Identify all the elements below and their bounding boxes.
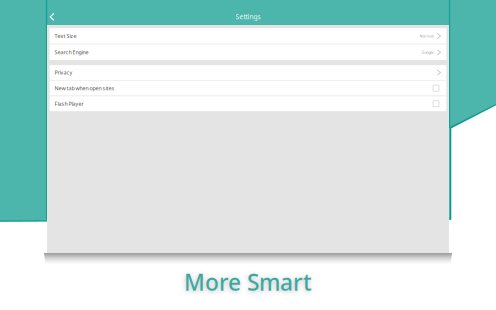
staticText: Search Engine	[54, 49, 88, 56]
button[interactable]: Flash Player	[50, 96, 446, 111]
button[interactable]: Text Size	[50, 28, 446, 44]
button[interactable]: New tab when open sites	[50, 81, 446, 96]
staticText: Google	[422, 50, 434, 55]
button[interactable]: Back	[47, 0, 60, 24]
button[interactable]: Search Engine	[50, 44, 446, 60]
staticText: Flash Player	[54, 100, 83, 107]
staticText: Normal	[420, 33, 434, 39]
staticText: New tab when open sites	[54, 85, 114, 92]
button[interactable]: Privacy	[50, 65, 446, 80]
staticText: Settings	[235, 12, 260, 21]
staticText: Text Size	[54, 32, 76, 40]
staticText: Privacy	[54, 69, 72, 76]
staticText: More Smart	[184, 267, 312, 297]
